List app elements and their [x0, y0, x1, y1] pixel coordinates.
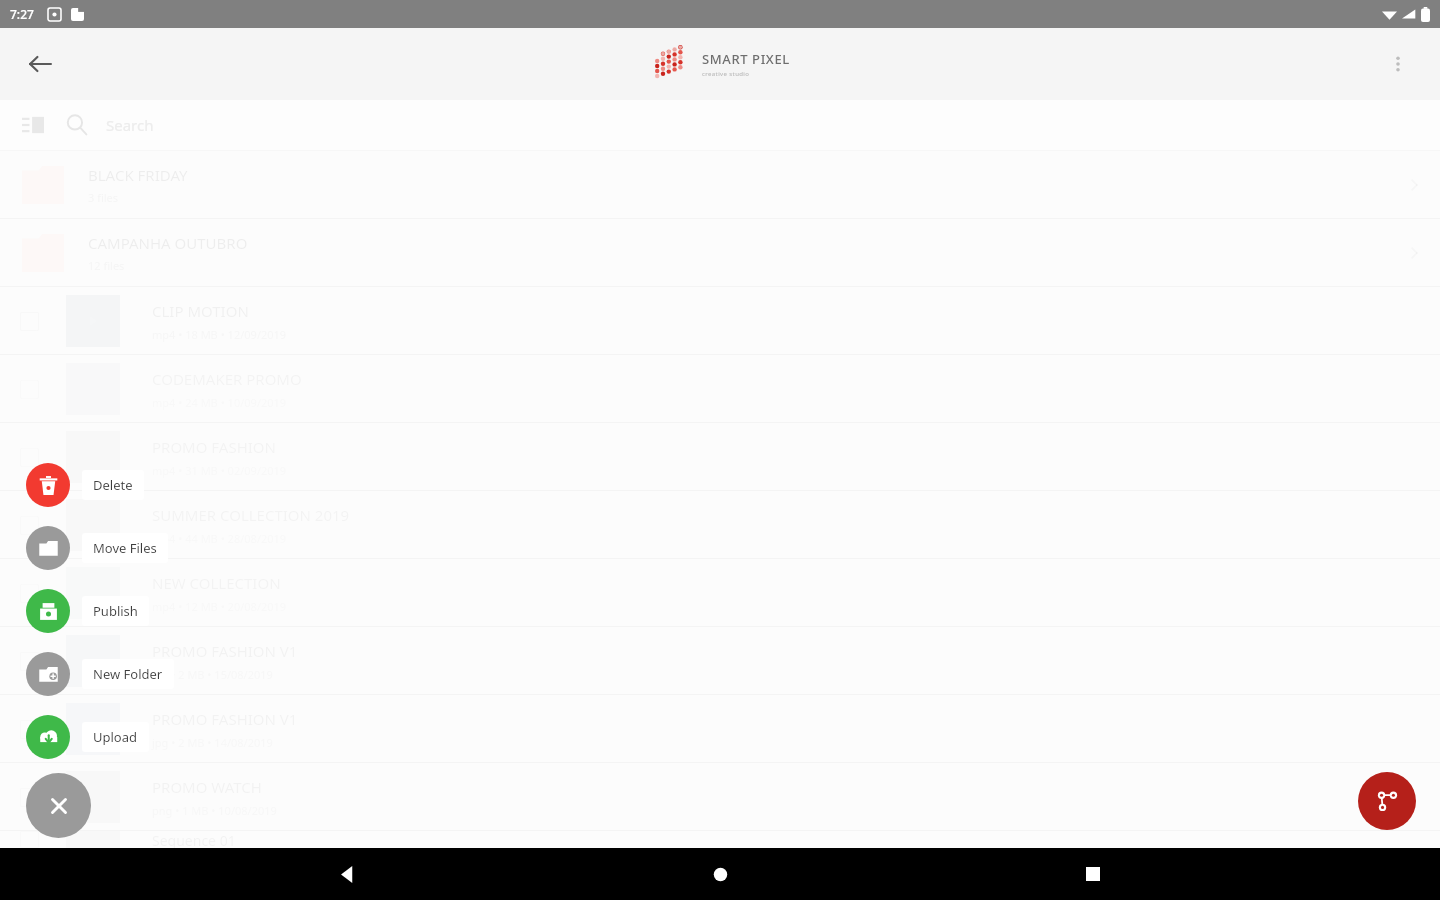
button[interactable]: SMART PIXEL — [650, 44, 790, 84]
button[interactable]: Move Files — [82, 533, 168, 563]
button[interactable]: New Folder — [26, 652, 70, 696]
staticText: CAMPANHA OUTUBRO — [88, 233, 248, 253]
button[interactable]: Share — [1358, 772, 1416, 830]
staticText: New Folder — [93, 665, 163, 683]
button[interactable]: New Folder — [82, 659, 174, 689]
button[interactable]: Toggle view — [16, 108, 50, 142]
button[interactable]: PROMO WATCH — [0, 763, 1440, 830]
staticText: Upload — [93, 728, 138, 746]
button[interactable]: Back — [18, 42, 62, 86]
button[interactable]: Search — [60, 108, 94, 142]
staticText: Search — [106, 115, 154, 135]
button[interactable]: SUMMER COLLECTION 2019 — [0, 491, 1440, 558]
button[interactable]: Publish — [26, 589, 70, 633]
button[interactable]: PROMO FASHION V1 — [0, 695, 1440, 762]
button[interactable]: Close menu — [26, 773, 91, 838]
staticText: creative studio — [702, 70, 750, 78]
button[interactable]: Back — [321, 848, 373, 900]
button[interactable]: Move Files — [26, 526, 70, 570]
staticText: Delete — [93, 476, 133, 494]
button[interactable]: NEW COLLECTION — [0, 559, 1440, 626]
button[interactable]: Upload — [82, 722, 149, 752]
staticText: Move Files — [93, 539, 157, 557]
staticText: 7:27 — [10, 6, 34, 22]
button[interactable]: PROMO FASHION V1 — [0, 627, 1440, 694]
staticText: BLACK FRIDAY — [88, 165, 188, 185]
button[interactable]: Sequence 01 — [0, 831, 1440, 848]
button[interactable]: Publish — [82, 596, 149, 626]
staticText: CLIP MOTION — [152, 301, 249, 321]
button[interactable]: Delete — [26, 463, 70, 507]
button[interactable]: PROMO FASHION — [0, 423, 1440, 490]
button[interactable]: More options — [1378, 44, 1418, 84]
button[interactable]: Home — [694, 848, 746, 900]
staticText: Publish — [93, 602, 138, 620]
button[interactable]: Recent apps — [1067, 848, 1119, 900]
button[interactable]: Delete — [82, 470, 144, 500]
staticText: jpg • 2 MB • 15/08/2019 — [152, 667, 273, 682]
button[interactable]: Upload — [26, 715, 70, 759]
staticText: SMART PIXEL — [702, 50, 790, 68]
